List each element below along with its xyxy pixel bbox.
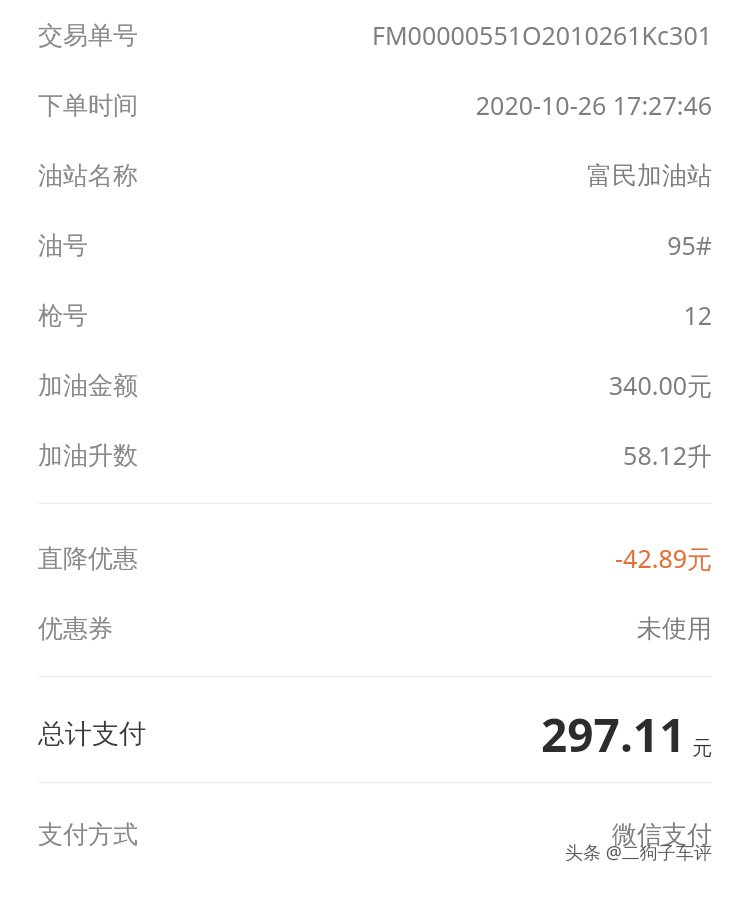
staticText: 直降优惠 [38,543,138,574]
staticText: 297.11 [541,703,686,766]
staticText: 枪号 [38,300,88,331]
staticText: 加油金额 [38,370,138,401]
staticText: 油站名称 [38,160,138,191]
button[interactable]: 优惠券 [0,593,750,663]
staticText: 下单时间 [38,90,138,121]
button[interactable]: 加油升数 [0,420,750,490]
button[interactable]: 总计支付 [0,696,750,772]
staticText: -42.89元 [615,541,712,575]
staticText: FM00000551O2010261Kc301 [371,18,712,52]
button[interactable]: 油站名称 [0,140,750,210]
staticText: 未使用 [637,613,712,644]
staticText: 58.12升 [623,438,712,472]
staticText: 优惠券 [38,613,113,644]
button[interactable]: 交易单号 [0,0,750,70]
staticText: 富民加油站 [587,160,712,191]
staticText: 加油升数 [38,440,138,471]
staticText: 微信支付 [612,819,712,850]
staticText: 元 [692,736,712,761]
button[interactable]: 支付方式 [0,799,750,869]
staticText: 交易单号 [38,20,138,51]
button[interactable]: 下单时间 [0,70,750,140]
staticText: 340.00元 [608,368,712,402]
button[interactable]: 直降优惠 [0,523,750,593]
staticText: 油号 [38,230,88,261]
staticText: 95# [667,228,712,262]
staticText: 头条 @二狗子车评 [565,840,712,865]
button[interactable]: 加油金额 [0,350,750,420]
staticText: 12 [683,298,712,332]
button[interactable]: 油号 [0,210,750,280]
button[interactable]: 枪号 [0,280,750,350]
staticText: 2020-10-26 17:27:46 [475,88,712,122]
staticText: 总计支付 [38,717,146,751]
staticText: 支付方式 [38,819,138,850]
